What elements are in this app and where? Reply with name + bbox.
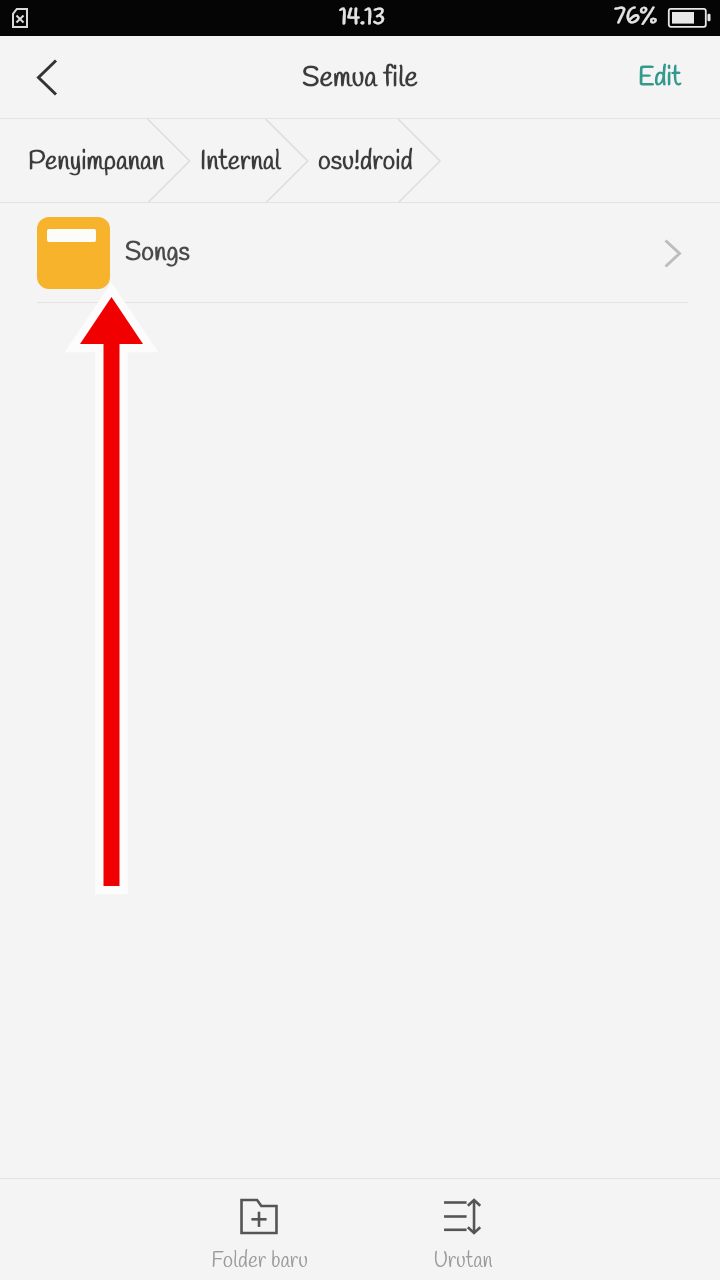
staticText: Urutan [433, 1247, 493, 1275]
staticText: Semua file [302, 60, 418, 97]
staticText: Edit [638, 61, 682, 96]
staticText: osu!droid [318, 145, 413, 180]
button[interactable]: Urutan [361, 1178, 565, 1280]
staticText: Songs [125, 236, 190, 271]
button[interactable]: Back [0, 36, 92, 119]
button[interactable]: Edit [608, 36, 720, 119]
staticText: Penyimpanan [28, 145, 165, 180]
button[interactable]: Penyimpanan [0, 119, 165, 203]
button[interactable]: osu!droid [318, 119, 413, 203]
button[interactable]: Songs [0, 203, 720, 303]
staticText: Internal [200, 145, 281, 180]
staticText: 76% [614, 1, 658, 33]
staticText: Folder baru [211, 1247, 308, 1275]
button[interactable]: Internal [200, 119, 281, 203]
button[interactable]: Folder baru [157, 1178, 361, 1280]
staticText: 14.13 [339, 2, 386, 34]
